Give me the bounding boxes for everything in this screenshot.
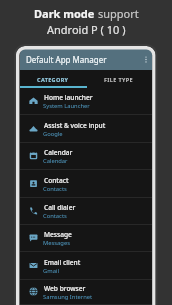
staticText: CATEGORY bbox=[37, 76, 69, 83]
button[interactable]: Assist & voice input bbox=[20, 115, 152, 143]
staticText: Call dialer bbox=[44, 203, 76, 212]
staticText: Calendar bbox=[43, 157, 68, 165]
staticText: Google bbox=[43, 130, 63, 138]
button[interactable]: Email client bbox=[20, 252, 152, 280]
staticText: Samsung Internet bbox=[43, 293, 93, 301]
staticText: Contact bbox=[44, 176, 69, 185]
staticText: Web browser bbox=[44, 284, 86, 293]
staticText: Contacts bbox=[43, 185, 67, 193]
staticText: Default App Manager bbox=[26, 54, 107, 65]
staticText: Contacts bbox=[43, 212, 67, 220]
button[interactable]: More options bbox=[140, 49, 152, 70]
staticText: Android P ( 10 ) bbox=[47, 22, 126, 37]
staticText: Assist & voice input bbox=[44, 121, 106, 130]
staticText: support bbox=[98, 6, 139, 21]
button[interactable]: CATEGORY bbox=[20, 70, 86, 88]
staticText: Gmail bbox=[43, 267, 59, 275]
button[interactable]: Home launcher bbox=[20, 88, 152, 115]
button[interactable]: Message bbox=[20, 225, 152, 252]
staticText: Calendar bbox=[44, 148, 73, 157]
staticText: Dark mode bbox=[34, 6, 98, 21]
button[interactable]: Calendar bbox=[20, 143, 152, 170]
button[interactable]: Web browser bbox=[20, 280, 152, 305]
button[interactable]: Call dialer bbox=[20, 198, 152, 225]
staticText: Message bbox=[44, 230, 72, 239]
staticText: Home launcher bbox=[44, 93, 93, 102]
button[interactable]: Contact bbox=[20, 170, 152, 198]
staticText: Email client bbox=[44, 258, 81, 267]
staticText: System Launcher bbox=[43, 102, 90, 110]
staticText: Messages bbox=[43, 239, 70, 247]
staticText: FILE TYPE bbox=[104, 76, 134, 83]
button[interactable]: FILE TYPE bbox=[86, 70, 152, 88]
